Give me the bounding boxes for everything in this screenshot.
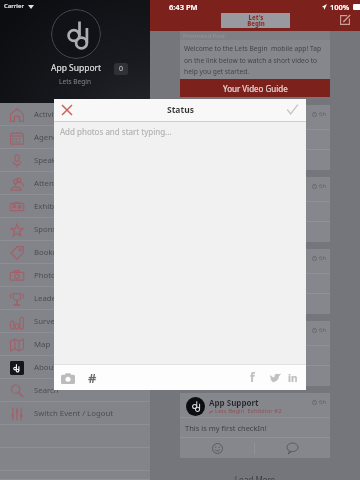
staticText: Let's Begin: [247, 14, 265, 28]
button[interactable]: Attendees: [0, 172, 150, 195]
button[interactable]: Your Video Guide: [180, 79, 330, 97]
staticText: Bookmarks: [34, 247, 76, 258]
button[interactable]: Like: [180, 438, 254, 458]
button[interactable]: Post status: [284, 101, 300, 117]
staticText: 6h: [319, 326, 327, 334]
staticText: Sponsors: [34, 224, 69, 235]
button[interactable]: Add hashtag: [84, 369, 100, 385]
staticText: Map: [34, 339, 51, 350]
button[interactable]: Exhibitors: [0, 195, 150, 218]
button[interactable]: Comment: [255, 150, 330, 170]
button[interactable]: Agenda: [0, 126, 150, 149]
staticText: Switch Event / Logout: [34, 408, 114, 419]
button[interactable]: Share to LinkedIn: [285, 370, 301, 386]
button[interactable]: Leaderboard: [0, 287, 150, 310]
staticText: Lets Begin: [0, 77, 150, 86]
button[interactable]: Bookmarks: [0, 241, 150, 264]
staticText: Lets Begin Exhibitor #2: [215, 119, 282, 127]
staticText: App Support: [209, 397, 259, 408]
staticText: #: [88, 369, 97, 385]
button[interactable]: Comment: [255, 366, 330, 386]
button[interactable]: Share to Facebook: [244, 369, 260, 385]
staticText: About: [34, 362, 57, 373]
staticText: 0: [119, 64, 124, 74]
staticText: 100%: [330, 2, 350, 12]
button[interactable]: Map: [0, 333, 150, 356]
button[interactable]: Surveys: [0, 310, 150, 333]
button[interactable]: Sponsors: [0, 218, 150, 241]
button[interactable]: About: [0, 356, 150, 379]
staticText: 6:43 PM: [169, 2, 198, 12]
staticText: Welcome to the Lets Begin mobile app! Ta…: [184, 44, 327, 76]
button[interactable]: Switch Event / Logout: [0, 402, 150, 425]
staticText: in: [288, 371, 298, 385]
button[interactable]: Speakers: [0, 149, 150, 172]
staticText: Add photos and start typing...: [60, 126, 172, 137]
staticText: f: [250, 369, 255, 385]
staticText: Carrier: [4, 2, 24, 10]
button[interactable]: Close: [59, 102, 75, 118]
button[interactable]: Compose post: [338, 13, 352, 27]
staticText: This is my first checkIn!: [185, 423, 267, 433]
staticText: 6h: [319, 398, 327, 406]
staticText: Status: [167, 104, 194, 116]
button[interactable]: Like: [180, 366, 254, 386]
staticText: Photos: [34, 270, 60, 281]
staticText: Activity: [34, 109, 61, 120]
staticText: Exhibitors: [34, 201, 71, 212]
button[interactable]: Load More: [150, 462, 360, 480]
staticText: Agenda: [34, 132, 63, 143]
button[interactable]: Add photo: [60, 370, 76, 386]
staticText: Load More: [150, 474, 360, 480]
staticText: Search: [34, 385, 59, 396]
staticText: Attendees: [34, 178, 72, 189]
staticText: 6h: [319, 182, 327, 190]
staticText: Surveys: [34, 316, 63, 327]
staticText: 6h: [319, 110, 327, 118]
button[interactable]: Comment: [255, 222, 330, 242]
button[interactable]: Search: [0, 379, 150, 402]
button[interactable]: Share to Twitter: [267, 370, 283, 386]
staticText: Speakers: [34, 155, 68, 166]
staticText: Promoted Post: [183, 32, 225, 40]
staticText: Leaderboard: [34, 293, 82, 304]
staticText: 6h: [319, 254, 327, 262]
button[interactable]: Comment: [255, 294, 330, 314]
button[interactable]: Activity: [0, 103, 150, 126]
staticText: Your Video Guide: [223, 83, 288, 94]
staticText: Lets Begin Exhibitor #2: [215, 407, 282, 415]
button[interactable]: Photos: [0, 264, 150, 287]
button[interactable]: Comment: [255, 438, 330, 458]
staticText: App Support: [51, 62, 102, 74]
